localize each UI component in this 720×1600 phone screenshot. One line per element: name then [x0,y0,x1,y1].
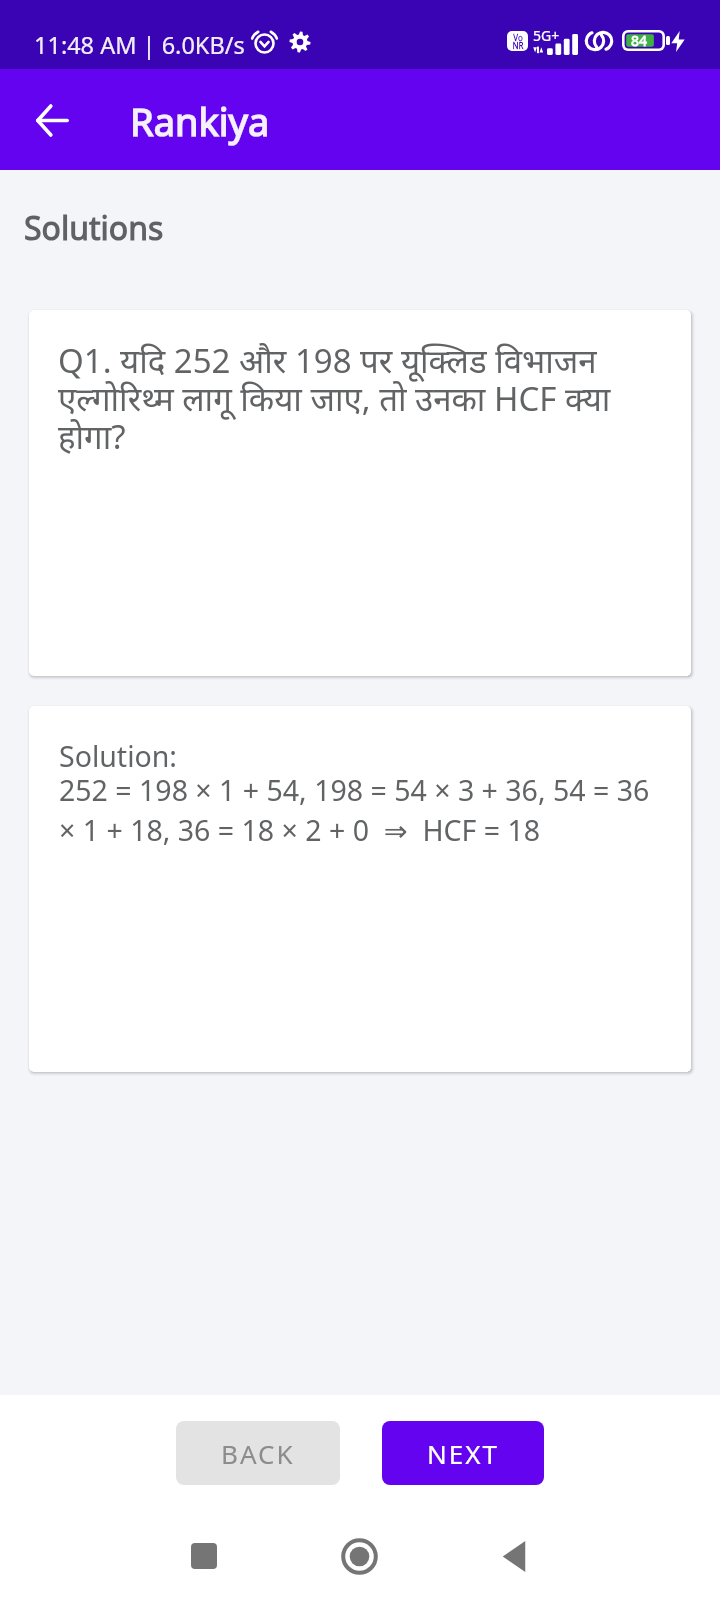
staticText: BACK [221,1436,295,1471]
staticText: Vo NR [512,32,524,51]
staticText: 252 = 198 × 1 + 54, 198 = 54 × 3 + 36, 5… [59,771,669,849]
button[interactable]: Navigate up [18,86,86,154]
staticText: NEXT [427,1436,499,1471]
button[interactable]: Back [486,1528,542,1584]
staticText: Q1. यदि 252 और 198 पर यूक्लिड विभाजन एल्… [58,338,667,458]
button[interactable]: BACK [176,1421,340,1485]
button[interactable]: Q1. यदि 252 और 198 पर यूक्लिड विभाजन एल्… [29,310,691,676]
button[interactable]: Solution: [29,706,691,1072]
button[interactable]: Home [331,1528,387,1584]
staticText: Solutions [24,206,164,250]
staticText: Solution: [59,737,177,776]
staticText: 11:48 AM | 6.0KB/s [34,29,245,61]
button[interactable]: Recent apps [176,1528,232,1584]
button[interactable]: NEXT [382,1421,544,1485]
staticText: Rankiya [130,95,270,147]
staticText: 5G+ [533,26,560,45]
staticText: 84 [631,31,648,50]
